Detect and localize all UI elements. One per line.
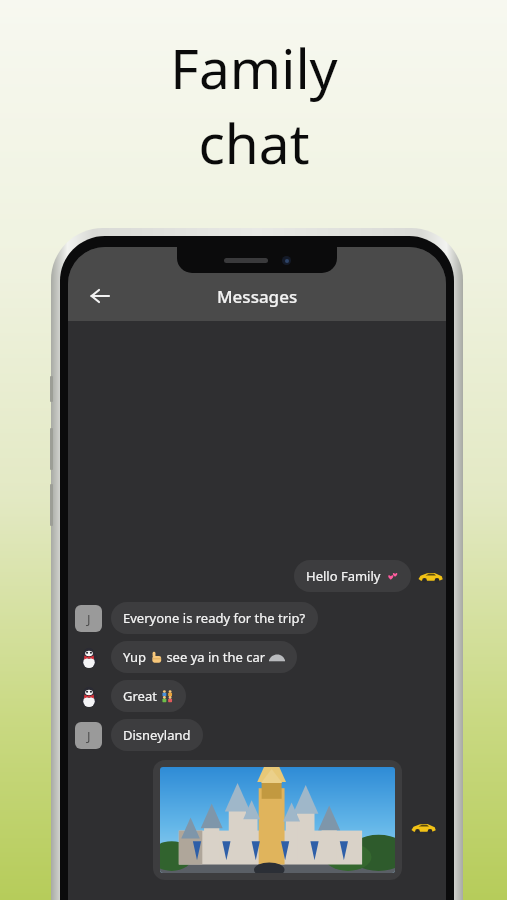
button[interactable]: Everyone is ready for the trip? [111,602,318,634]
staticText: Messages [217,285,298,308]
button[interactable]: Contact avatar penguin [75,683,102,710]
staticText: J [87,727,91,745]
button[interactable]: Photo of Disneyland castle [153,760,402,880]
staticText: Everyone is ready for the trip? [123,609,306,627]
staticText: Yup [123,648,150,666]
button[interactable]: Great [111,680,186,712]
button[interactable]: Hello Family [294,560,411,592]
staticText: chat [198,105,310,180]
button[interactable]: Contact avatar penguin [75,644,102,671]
staticText: J [87,610,91,628]
button[interactable]: Disneyland [111,719,203,751]
staticText: Disneyland [123,726,191,744]
staticText: Hello Family [306,567,381,585]
button[interactable]: Back [82,278,118,314]
button[interactable]: Yup [111,641,297,673]
staticText: Great [123,687,161,705]
staticText: Family [170,30,338,105]
button[interactable]: Contact avatar J [75,722,102,749]
button[interactable]: Contact avatar J [75,605,102,632]
staticText: see ya in the car [163,648,269,666]
